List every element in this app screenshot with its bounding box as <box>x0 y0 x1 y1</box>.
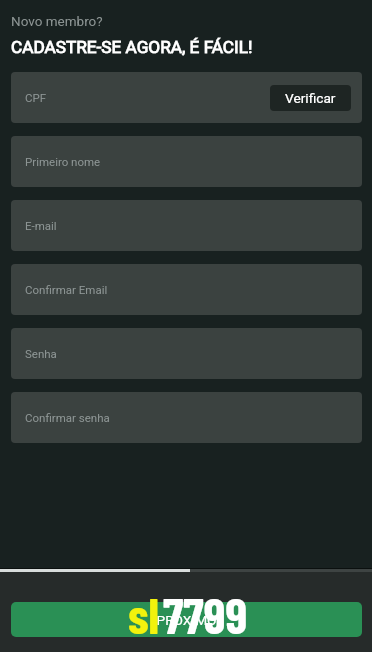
staticText: Senha <box>25 347 57 360</box>
staticText: Confirmar Email <box>25 283 108 296</box>
staticText: Novo membro? <box>11 13 103 29</box>
button[interactable]: Confirmar Email <box>11 264 362 315</box>
staticText: E-mail <box>25 219 57 232</box>
staticText: PRÓXIMO <box>156 612 217 628</box>
button[interactable]: E-mail <box>11 200 362 251</box>
staticText: Verificar <box>285 90 336 106</box>
button[interactable]: Senha <box>11 328 362 379</box>
button[interactable]: Verificar <box>270 85 351 111</box>
button[interactable]: Primeiro nome <box>11 136 362 187</box>
staticText: CADASTRE-SE AGORA, É FÁCIL! <box>11 37 253 57</box>
button[interactable]: PRÓXIMO <box>11 602 362 637</box>
button[interactable]: Confirmar senha <box>11 392 362 443</box>
button[interactable]: CPF <box>11 72 362 123</box>
staticText: CPF <box>25 91 47 104</box>
staticText: Primeiro nome <box>25 155 101 168</box>
staticText: Confirmar senha <box>25 411 110 424</box>
staticText: sl <box>128 584 160 644</box>
staticText: 7799 <box>163 584 248 644</box>
